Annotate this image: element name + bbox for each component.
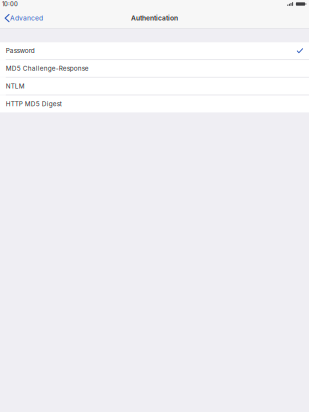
staticText: Authentication — [131, 14, 178, 22]
button[interactable]: MD5 Challenge-Response — [0, 60, 309, 77]
button[interactable]: NTLM — [0, 78, 309, 95]
staticText: HTTP MD5 Digest — [6, 100, 62, 108]
staticText: NTLM — [6, 82, 25, 90]
staticText: 10:00 — [2, 0, 18, 8]
staticText: Advanced — [10, 14, 43, 22]
staticText: Password — [6, 47, 35, 55]
button[interactable]: Back to Advanced — [0, 8, 49, 28]
staticText: MD5 Challenge-Response — [6, 65, 89, 72]
button[interactable]: HTTP MD5 Digest — [0, 95, 309, 112]
button[interactable]: Password — [0, 42, 309, 59]
